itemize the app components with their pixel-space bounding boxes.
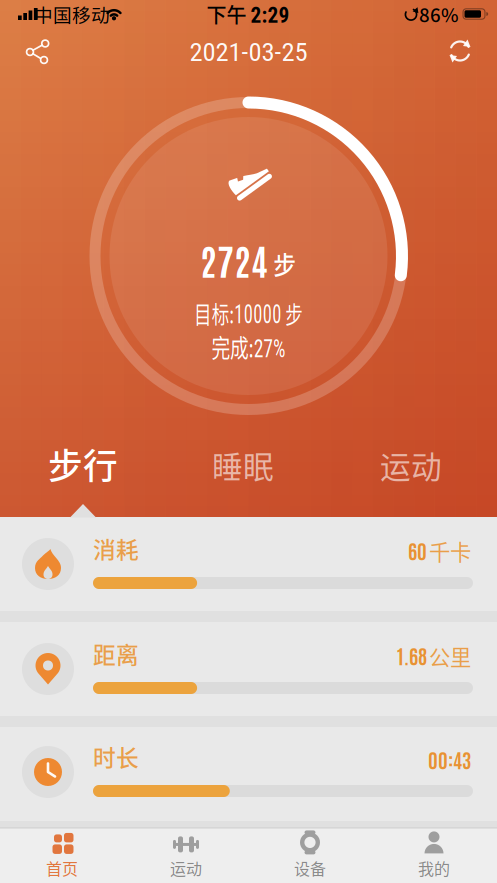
staticText: 步 xyxy=(272,245,297,282)
staticText: 27% xyxy=(255,333,298,364)
button[interactable]: 时长 xyxy=(0,725,497,819)
staticText: 公里 xyxy=(429,641,471,671)
staticText: 设备 xyxy=(294,856,326,880)
button[interactable]: 睡眠 xyxy=(188,443,298,487)
staticText: 目标: xyxy=(174,296,229,330)
button[interactable]: 运动 xyxy=(356,443,466,487)
staticText: 时长 xyxy=(93,740,139,773)
staticText: 我的 xyxy=(418,856,450,880)
button[interactable]: 步行 xyxy=(28,442,138,486)
staticText: 2021-03-25 xyxy=(189,36,307,68)
staticText: 完成: xyxy=(198,328,255,365)
staticText: 睡眠 xyxy=(212,443,274,487)
staticText: 1.68 xyxy=(397,642,427,668)
staticText: 2:29 xyxy=(250,3,289,28)
staticText: 消耗 xyxy=(93,532,139,565)
button[interactable]: 设备 xyxy=(255,829,365,881)
staticText: 运动 xyxy=(380,443,442,487)
staticText: 步 xyxy=(294,296,323,330)
button[interactable]: Refresh xyxy=(443,34,477,68)
staticText: 60 xyxy=(408,537,427,563)
button[interactable]: 我的 xyxy=(379,829,489,881)
staticText: 步行 xyxy=(48,439,118,489)
staticText: 下午 xyxy=(206,0,246,28)
staticText: 千卡 xyxy=(429,536,471,566)
button[interactable]: 运动 xyxy=(131,829,241,881)
staticText: 中国移动 xyxy=(34,0,110,27)
staticText: 86% xyxy=(419,0,459,27)
staticText: 10000 xyxy=(229,300,294,329)
staticText: 00:43 xyxy=(428,746,471,772)
button[interactable]: 距离 xyxy=(0,622,497,716)
button[interactable]: 首页 xyxy=(7,829,117,881)
button[interactable]: Share xyxy=(19,34,55,70)
staticText: 运动 xyxy=(170,856,202,880)
staticText: 距离 xyxy=(93,637,139,670)
staticText: 2724 xyxy=(200,236,268,283)
staticText: 首页 xyxy=(46,856,78,880)
button[interactable]: 消耗 xyxy=(0,517,497,611)
